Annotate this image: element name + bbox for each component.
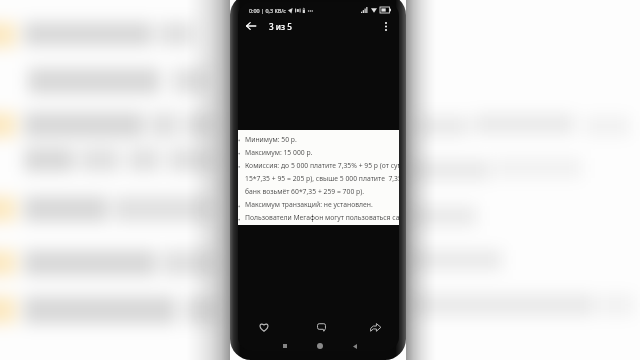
staticText: 15*7,35 + 95 = 205 р), свыше 5 000 плати… <box>245 174 399 183</box>
staticText: 3 из 5 <box>269 21 292 32</box>
staticText: банк возьмёт 60*7,35 + 259 = 700 р). <box>245 187 365 196</box>
staticText: Минимум: 50 р. <box>245 135 297 144</box>
button[interactable]: More options <box>377 17 395 35</box>
staticText: Максимум транзакций: не установлен. <box>245 200 373 209</box>
button[interactable]: Comment <box>311 317 331 337</box>
button[interactable]: Share <box>365 317 385 337</box>
button[interactable]: Recent apps <box>279 340 291 351</box>
staticText: Комиссия: до 5 000 платите 7,35% + 95 р … <box>245 161 399 170</box>
button[interactable]: Like <box>254 317 274 337</box>
staticText: Максимум: 15 000 р. <box>245 148 313 157</box>
button[interactable]: Navigate back <box>349 340 361 351</box>
button[interactable]: Home <box>314 340 326 351</box>
button[interactable]: Back <box>242 17 260 35</box>
staticText: Пользователи Мегафон могут пользоваться … <box>245 213 399 222</box>
staticText: 0:00 | 0,3 KB/c <box>249 7 286 14</box>
